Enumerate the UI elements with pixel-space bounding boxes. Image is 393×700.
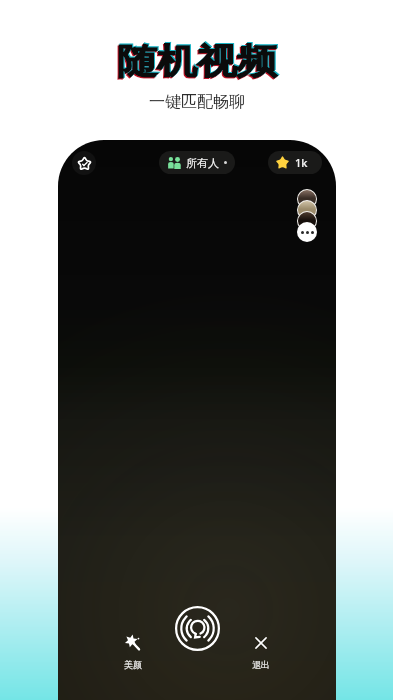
button[interactable]: 1k [268,151,322,174]
staticText: 随机视频 [116,40,276,83]
staticText: 一键匹配畅聊 [149,92,245,112]
staticText: 退出 [252,659,270,670]
staticText: 1k [295,155,308,170]
button[interactable]: Start random match [174,605,221,652]
button[interactable]: More participants [297,222,317,242]
button[interactable]: Exit [246,635,276,670]
staticText: 随机视频 [118,39,278,82]
staticText: 随机视频 [117,39,277,82]
button[interactable]: 所有人 [159,151,235,174]
button[interactable]: Beauty filter [118,635,148,670]
staticText: 美颜 [124,659,142,670]
button[interactable]: Favorites [72,151,96,175]
staticText: 所有人 [186,156,219,170]
